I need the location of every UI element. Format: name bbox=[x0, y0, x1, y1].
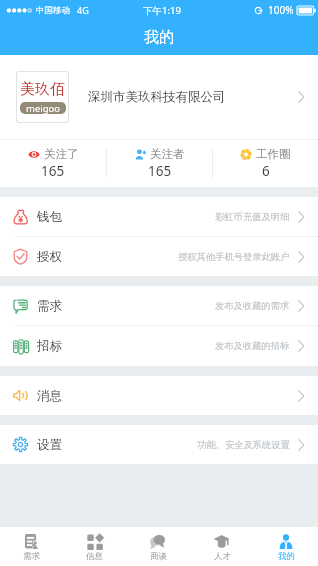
staticText: 发布及收藏的招标 bbox=[215, 340, 290, 352]
button[interactable]: 需求 bbox=[0, 286, 318, 325]
staticText: 工作圈 bbox=[256, 147, 291, 161]
staticText: 信息 bbox=[86, 551, 103, 562]
staticText: 彩虹币充值及明细 bbox=[215, 211, 290, 223]
staticText: 6 bbox=[262, 162, 270, 180]
staticText: meigoo bbox=[26, 102, 61, 114]
staticText: 我的 bbox=[144, 28, 174, 47]
staticText: 165 bbox=[41, 162, 65, 180]
button[interactable]: 设置 bbox=[0, 425, 318, 464]
staticText: 关注者 bbox=[150, 147, 185, 161]
button[interactable]: 消息 bbox=[0, 376, 318, 415]
staticText: 钱包 bbox=[37, 209, 62, 225]
button[interactable]: 人才 bbox=[190, 527, 254, 566]
staticText: 授权其他手机号登录此账户 bbox=[178, 251, 290, 263]
button[interactable]: 美玖佰 bbox=[0, 55, 318, 139]
staticText: 消息 bbox=[37, 388, 62, 404]
staticText: 商谈 bbox=[150, 551, 167, 562]
button[interactable]: 商谈 bbox=[126, 527, 190, 566]
staticText: 授权 bbox=[37, 249, 62, 265]
staticText: 功能、安全及系统设置 bbox=[197, 439, 290, 451]
staticText: 下午1:19 bbox=[143, 4, 181, 17]
button[interactable]: 关注者 bbox=[107, 139, 212, 187]
staticText: 人才 bbox=[214, 551, 231, 562]
button[interactable]: 招标 bbox=[0, 326, 318, 366]
staticText: 招标 bbox=[37, 338, 62, 354]
staticText: 我的 bbox=[278, 551, 295, 562]
staticText: 关注了 bbox=[44, 147, 79, 161]
staticText: 100% bbox=[268, 3, 294, 17]
staticText: 设置 bbox=[37, 437, 62, 453]
button[interactable]: 关注了 bbox=[0, 139, 106, 187]
button[interactable]: 需求 bbox=[0, 527, 63, 566]
button[interactable]: 我的 bbox=[254, 527, 318, 566]
button[interactable]: 钱包 bbox=[0, 197, 318, 236]
staticText: 165 bbox=[148, 162, 172, 180]
staticText: 需求 bbox=[37, 298, 62, 314]
staticText: 美玖佰 bbox=[20, 80, 65, 99]
staticText: 需求 bbox=[23, 551, 40, 562]
button[interactable]: 工作圈 bbox=[213, 139, 318, 187]
staticText: 深圳市美玖科技有限公司 bbox=[88, 89, 226, 105]
button[interactable]: 授权 bbox=[0, 237, 318, 276]
staticText: 发布及收藏的需求 bbox=[215, 300, 290, 312]
staticText: 中国移动 bbox=[36, 5, 70, 16]
button[interactable]: 信息 bbox=[63, 527, 126, 566]
staticText: 4G bbox=[77, 4, 89, 16]
